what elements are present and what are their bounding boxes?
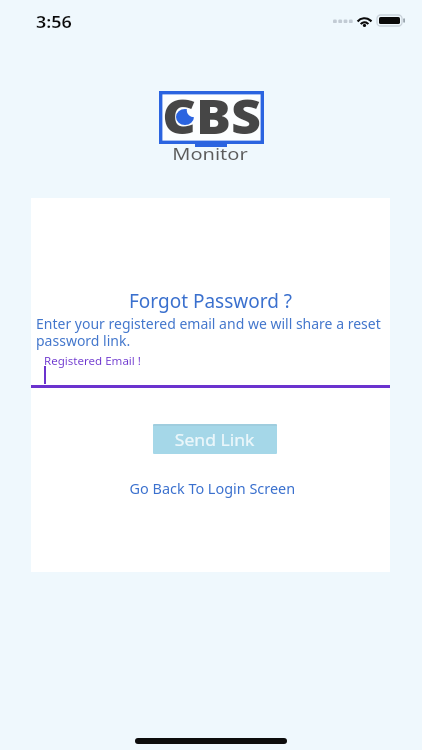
staticText: CBS [162, 84, 262, 137]
staticText: Registered Email ! [44, 353, 142, 368]
staticText: Monitor [0, 142, 422, 165]
button[interactable]: Registered Email ! [31, 350, 390, 388]
button[interactable]: Go Back To Login Screen [127, 476, 298, 501]
staticText: Send Link [175, 428, 255, 451]
staticText: Enter your registered email and we will … [36, 314, 384, 350]
staticText: Forgot Password ? [31, 288, 390, 314]
staticText: 3:56 [36, 11, 72, 33]
button[interactable]: Send Link [153, 424, 277, 454]
other: Battery [377, 15, 405, 26]
other: Wi-Fi [356, 14, 373, 27]
staticText: Go Back To Login Screen [130, 479, 295, 498]
